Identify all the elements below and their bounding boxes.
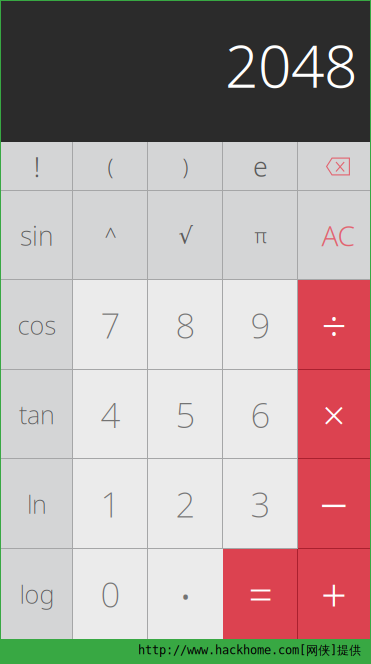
staticText: 8 [175, 302, 195, 348]
button[interactable]: square root [148, 191, 223, 280]
staticText: + [321, 564, 347, 624]
staticText: − [319, 470, 348, 538]
button[interactable]: Decimal point [148, 549, 223, 639]
button[interactable]: tangent [1, 370, 73, 459]
staticText: 9 [250, 302, 270, 348]
staticText: ( [107, 152, 113, 181]
staticText: 2 [175, 481, 195, 527]
button[interactable]: 1 [73, 459, 148, 549]
button[interactable]: 5 [148, 370, 223, 459]
button[interactable]: power [73, 191, 148, 280]
staticText: cos [17, 308, 56, 342]
button[interactable]: 8 [148, 280, 223, 370]
staticText: = [248, 566, 272, 622]
staticText: log [19, 577, 54, 611]
staticText: ÷ [321, 296, 346, 354]
staticText: sin [20, 218, 54, 253]
button[interactable]: e [223, 142, 298, 191]
button[interactable]: Minus [298, 459, 370, 549]
staticText: π [254, 222, 266, 249]
staticText: ln [27, 487, 47, 521]
button[interactable]: Plus [298, 549, 370, 639]
staticText: ! [33, 148, 40, 185]
button[interactable]: pi [223, 191, 298, 280]
staticText: 0 [100, 571, 120, 617]
button[interactable]: 7 [73, 280, 148, 370]
button[interactable]: open parenthesis [73, 142, 148, 191]
staticText: AC [321, 217, 354, 254]
button[interactable]: 9 [223, 280, 298, 370]
staticText: tan [19, 398, 55, 431]
button[interactable]: 2 [148, 459, 223, 549]
staticText: ) [182, 152, 188, 181]
button[interactable]: Divide [298, 280, 370, 370]
button[interactable]: factorial [1, 142, 73, 191]
button[interactable]: close parenthesis [148, 142, 223, 191]
button[interactable]: 6 [223, 370, 298, 459]
staticText: 5 [175, 391, 195, 437]
button[interactable]: natural logarithm [1, 459, 73, 549]
button[interactable]: 0 [73, 549, 148, 639]
button[interactable]: Equals [223, 549, 298, 639]
staticText: 4 [100, 391, 120, 437]
staticText: 2048 [225, 26, 357, 104]
staticText: × [322, 388, 345, 441]
staticText: 7 [100, 302, 120, 348]
staticText: http://www.hackhome.com[网侠]提供 [138, 643, 361, 658]
staticText: · [179, 559, 192, 629]
button[interactable]: cosine [1, 280, 73, 370]
button[interactable]: sine [1, 191, 73, 280]
staticText: 6 [250, 391, 270, 437]
staticText: ^ [104, 221, 116, 250]
button[interactable]: 4 [73, 370, 148, 459]
staticText: 3 [250, 481, 270, 527]
button[interactable]: Delete [298, 142, 370, 191]
button[interactable]: All clear [298, 191, 370, 280]
staticText: 1 [100, 481, 120, 527]
button[interactable]: 3 [223, 459, 298, 549]
button[interactable]: logarithm [1, 549, 73, 639]
button[interactable]: Multiply [298, 370, 370, 459]
staticText: e [253, 149, 268, 184]
staticText: √ [178, 223, 192, 248]
